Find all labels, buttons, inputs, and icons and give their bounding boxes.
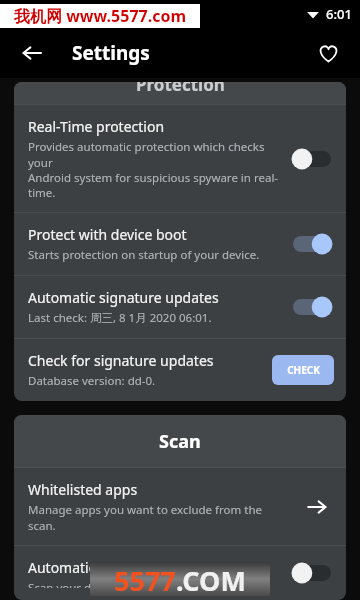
staticText: Real-Time protection	[28, 117, 165, 136]
staticText: 我机网 www.5577.com	[14, 5, 187, 27]
button[interactable]: Toggle off	[290, 146, 334, 172]
button[interactable]: Toggle on	[290, 294, 334, 320]
staticText: 5577	[114, 562, 176, 596]
button[interactable]: Favorite	[310, 35, 346, 71]
button[interactable]: Whitelisted apps	[14, 468, 346, 545]
staticText: Starts protection on startup of your dev…	[28, 247, 260, 263]
staticText: Protect with device boot	[28, 225, 187, 244]
staticText: Scan	[159, 429, 201, 454]
staticText: Settings	[72, 40, 150, 66]
staticText: .COM	[176, 562, 246, 596]
button[interactable]: Check for signature updates	[14, 339, 346, 401]
staticText: Protection	[136, 82, 225, 95]
staticText: Scan your device frequently for spies.	[28, 580, 230, 588]
staticText: Automatic signature updates	[28, 288, 219, 307]
button[interactable]: Toggle off	[290, 560, 334, 586]
staticText: CHECK	[287, 363, 320, 377]
button[interactable]: Automatic signature updates	[14, 276, 346, 338]
button[interactable]: Toggle on	[290, 231, 334, 257]
button[interactable]: Protect with device boot	[14, 213, 346, 275]
staticText: 6:01	[326, 5, 352, 23]
staticText: Whitelisted apps	[28, 480, 138, 499]
button[interactable]: Back	[14, 35, 50, 71]
button[interactable]: Open whitelisted apps	[300, 490, 334, 524]
staticText: Manage apps you want to exclude from the…	[28, 502, 292, 533]
button[interactable]: Real-Time protection	[14, 105, 346, 212]
staticText: Database version: dd-0.	[28, 373, 156, 389]
staticText: Provides automatic protection which chec…	[28, 139, 282, 200]
staticText: Automatic device scans	[28, 558, 181, 577]
staticText: Check for signature updates	[28, 351, 214, 370]
button[interactable]: CHECK	[272, 355, 334, 385]
button[interactable]: Automatic device scans	[14, 546, 346, 600]
staticText: Last check: 周三, 8 1月 2020 06:01.	[28, 310, 212, 326]
